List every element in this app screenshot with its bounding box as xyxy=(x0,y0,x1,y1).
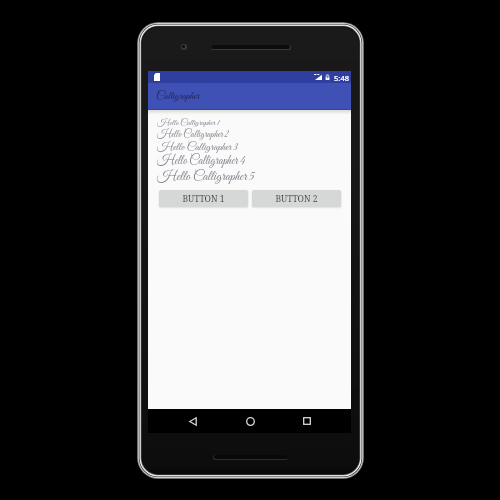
staticText: Hello Calligrapher 3 xyxy=(157,140,238,154)
button[interactable]: BUTTON 2 xyxy=(252,190,341,207)
staticText: BUTTON 2 xyxy=(275,193,318,205)
button[interactable]: Back xyxy=(183,411,203,431)
staticText: Calligrapher xyxy=(156,89,200,103)
staticText: Hello Calligrapher 2 xyxy=(157,128,229,141)
staticText: Hello Calligrapher 4 xyxy=(157,153,245,169)
staticText: BUTTON 1 xyxy=(182,193,225,205)
staticText: 5:48 xyxy=(334,73,350,83)
button[interactable]: BUTTON 1 xyxy=(159,190,248,207)
button[interactable]: Recent apps xyxy=(297,411,317,431)
button[interactable]: Home xyxy=(240,411,260,431)
staticText: Hello Calligrapher 5 xyxy=(157,168,255,185)
staticText: Hello Calligrapher 1 xyxy=(157,117,220,128)
